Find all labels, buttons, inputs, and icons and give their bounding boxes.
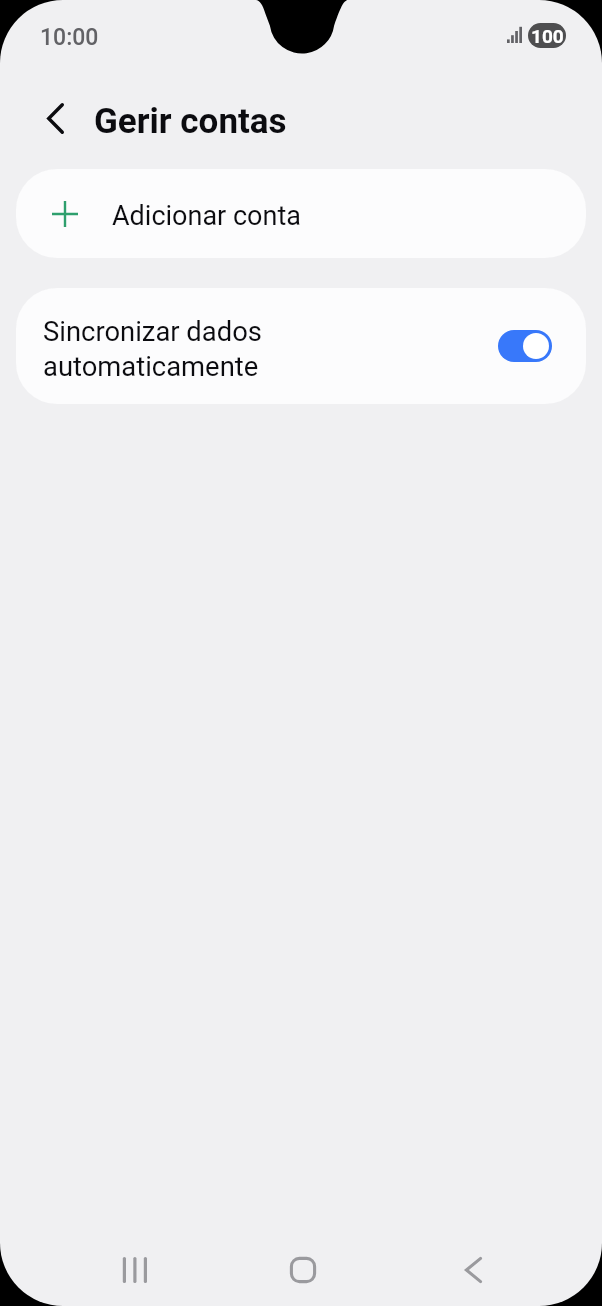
button[interactable]: Recents	[105, 1240, 165, 1300]
button[interactable]: Sincronizar dados automaticamente	[16, 288, 586, 404]
staticText: Adicionar conta	[112, 200, 301, 232]
staticText: Gerir contas	[94, 101, 287, 142]
staticText: 100	[531, 25, 564, 47]
button[interactable]: Home	[273, 1240, 333, 1300]
button[interactable]: Back	[33, 96, 77, 140]
button[interactable]: Back	[443, 1240, 503, 1300]
staticText: 10:00	[40, 24, 99, 51]
button[interactable]: Sincronizar dados automaticamente	[498, 330, 552, 362]
button[interactable]: Adicionar conta	[16, 169, 586, 258]
staticText: Sincronizar dados automaticamente	[43, 316, 262, 383]
